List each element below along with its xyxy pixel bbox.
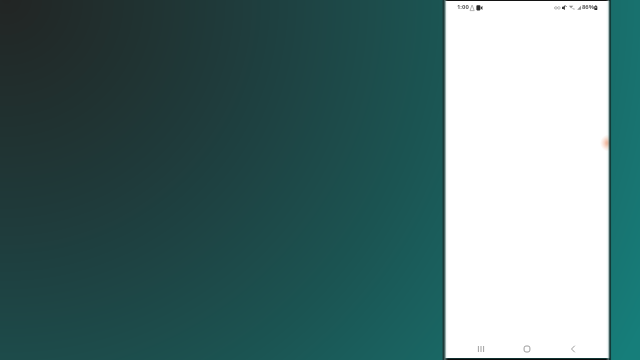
button[interactable]: Recent apps xyxy=(469,340,493,360)
button[interactable]: Home xyxy=(515,340,539,360)
staticText: 1:00 xyxy=(457,3,469,11)
staticText: 86% xyxy=(582,3,595,11)
button[interactable]: Back xyxy=(561,340,585,360)
button[interactable]: Floating action xyxy=(601,136,610,147)
